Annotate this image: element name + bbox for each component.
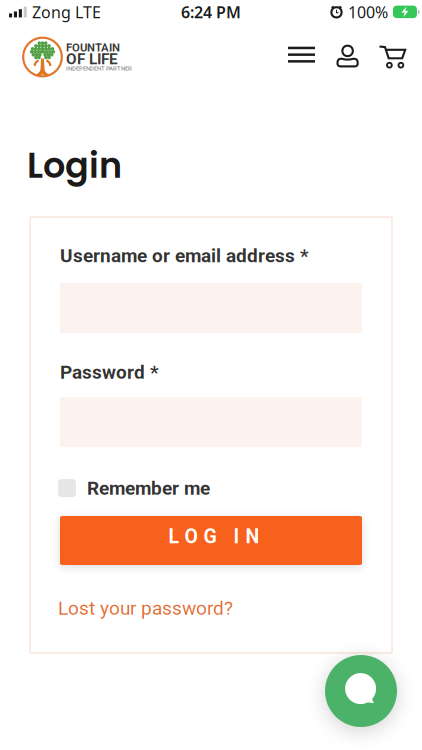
staticText: LOG IN: [168, 525, 259, 548]
button[interactable]: Account: [333, 41, 362, 71]
staticText: FOUNTAIN: [66, 41, 120, 54]
staticText: OF LIFE: [66, 50, 118, 68]
staticText: Remember me: [87, 477, 210, 499]
button[interactable]: Cart: [375, 41, 410, 72]
staticText: Login: [27, 141, 122, 190]
button[interactable]: Chat: [325, 655, 397, 727]
button[interactable]: Lost your password?: [58, 597, 233, 619]
staticText: INDEPENDENT PARTNER: [66, 65, 132, 72]
button[interactable]: Remember me: [58, 477, 210, 499]
button[interactable]: Menu: [286, 39, 317, 70]
staticText: Zong LTE: [32, 1, 101, 23]
staticText: Password *: [60, 361, 159, 383]
staticText: 100%: [348, 1, 388, 23]
staticText: 6:24 PM: [181, 1, 241, 23]
button[interactable]: LOG IN: [60, 516, 362, 565]
staticText: Username or email address *: [60, 244, 309, 267]
button[interactable]: Fountain of Life home: [22, 32, 147, 82]
staticText: Lost your password?: [58, 597, 233, 619]
